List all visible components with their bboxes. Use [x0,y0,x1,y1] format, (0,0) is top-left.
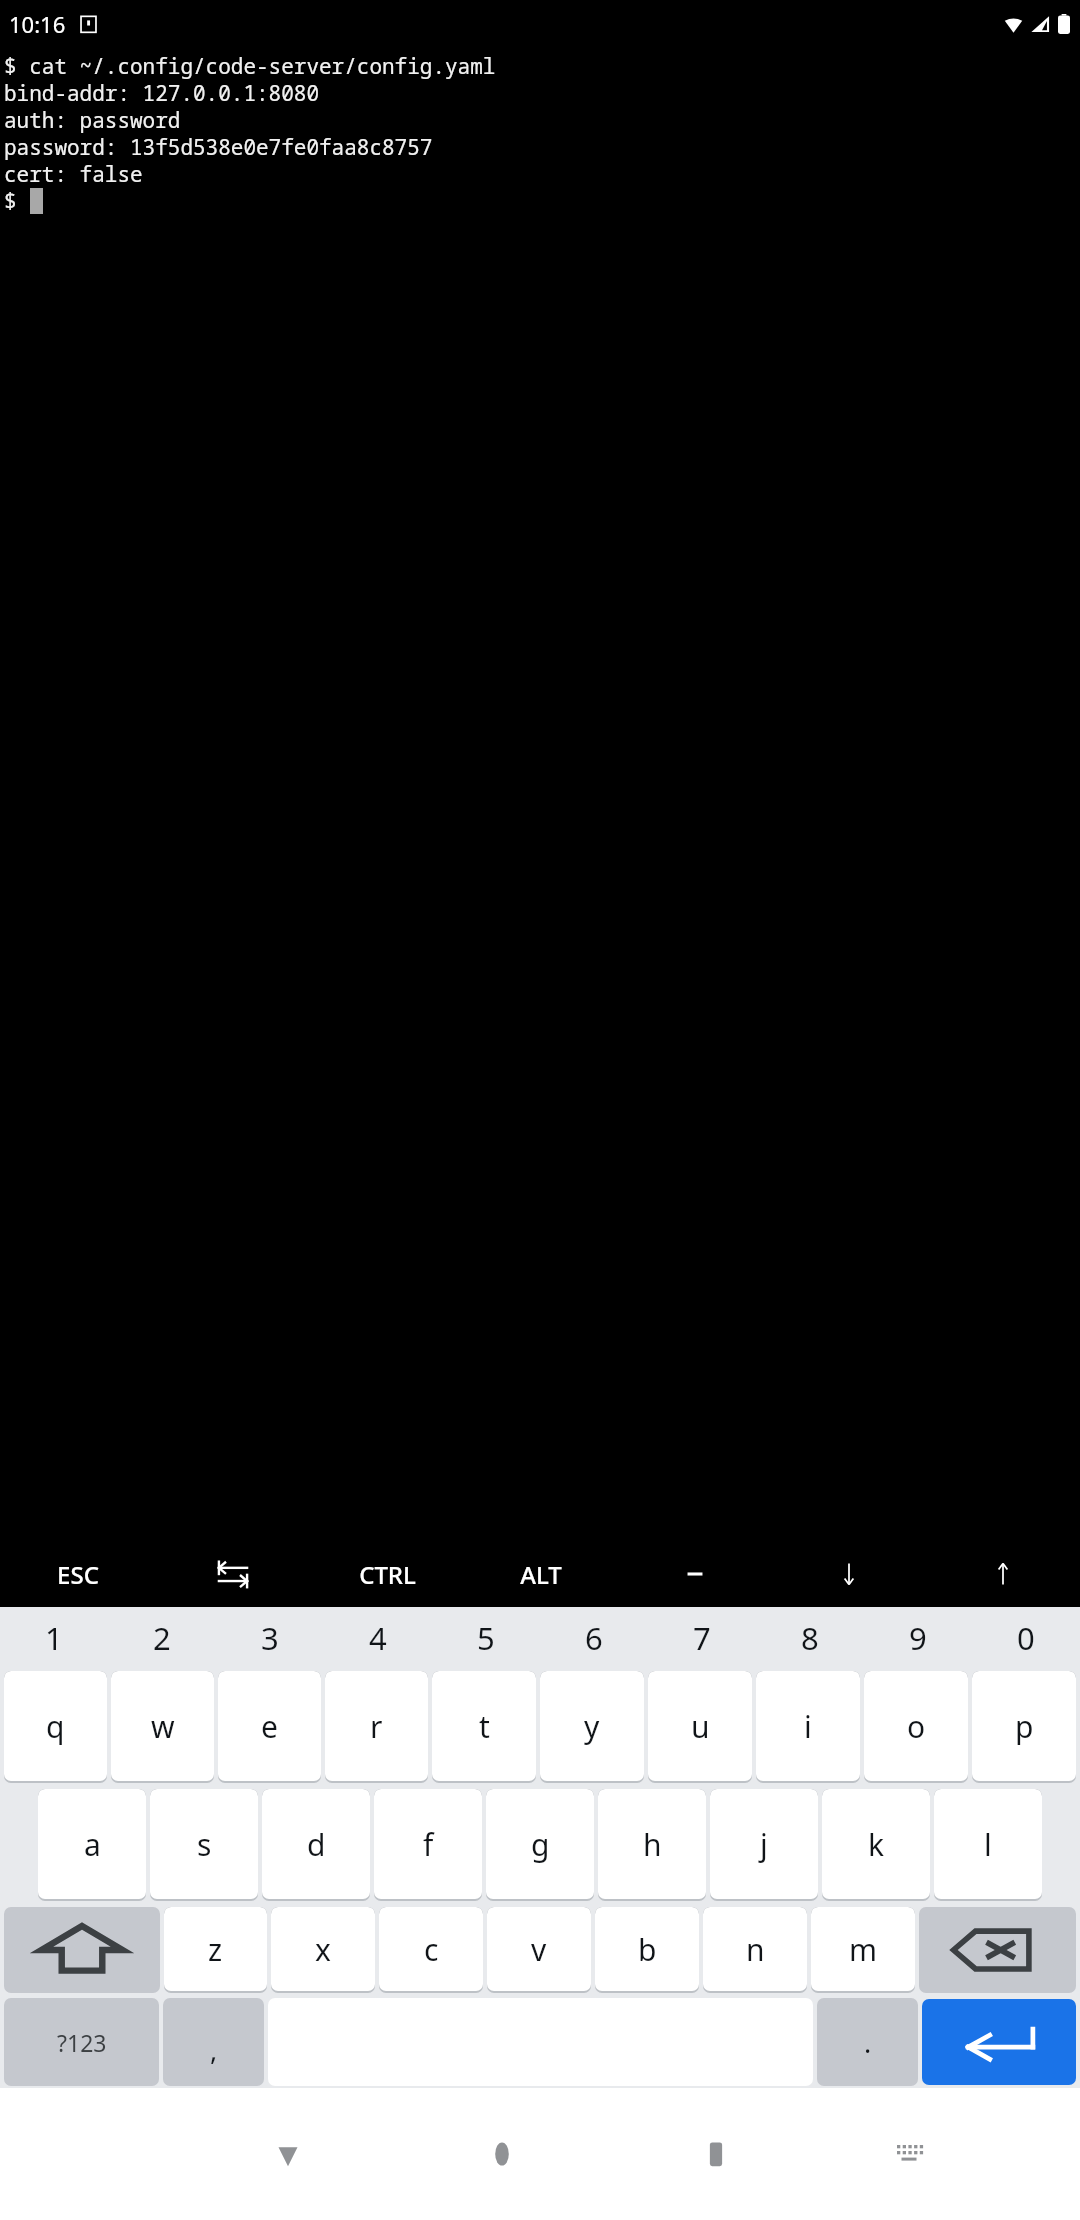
staticText: 8 [801,1617,819,1659]
button[interactable]: 8 [756,1607,864,1668]
staticText: auth: password [4,106,181,133]
button[interactable]: t [432,1671,536,1781]
staticText: cert: false [4,160,143,187]
button[interactable]: CTRL [310,1541,464,1607]
staticText: s [197,1824,212,1865]
button[interactable]: Backspace [919,1907,1076,1993]
button[interactable]: 5 [432,1607,540,1668]
staticText: v [531,1929,547,1970]
staticText: a [84,1824,101,1865]
button[interactable]: 7 [648,1607,756,1668]
button[interactable]: b [595,1907,699,1991]
staticText: r [370,1706,383,1747]
staticText: 10:16 [9,9,66,39]
staticText: $ [4,187,30,214]
button[interactable]: k [822,1789,930,1899]
staticText: 5 [477,1617,495,1659]
button[interactable]: ALT [464,1541,618,1607]
staticText: bind-addr: 127.0.0.1:8080 [4,79,319,106]
button[interactable]: Recents [609,2088,823,2220]
button[interactable]: c [379,1907,483,1991]
button[interactable]: m [811,1907,915,1991]
staticText: d [307,1824,326,1865]
staticText: 9 [909,1617,927,1659]
button[interactable]: p [972,1671,1076,1781]
button[interactable]: 1 [0,1607,108,1668]
button[interactable]: h [598,1789,706,1899]
staticText: CTRL [359,1558,416,1591]
button[interactable]: q [4,1671,107,1781]
button[interactable]: 0 [972,1607,1080,1668]
staticText: l [984,1824,992,1865]
staticText: ?123 [57,2027,107,2058]
button[interactable]: Back [181,2088,395,2220]
button[interactable]: Home [395,2088,609,2220]
button[interactable]: . [817,1998,918,2086]
button[interactable]: Switch keyboard [823,2088,994,2220]
staticText: $ cat ~/.config/code-server/config.yaml [4,52,496,79]
button[interactable]: Minus [618,1541,772,1607]
button[interactable]: , [163,1998,264,2086]
button[interactable]: o [864,1671,968,1781]
button[interactable]: Tab [155,1541,310,1607]
button[interactable]: e [218,1671,321,1781]
button[interactable]: 2 [108,1607,216,1668]
staticText: ESC [57,1558,99,1591]
staticText: p [1015,1706,1034,1747]
staticText: m [849,1929,878,1970]
button[interactable]: 4 [324,1607,432,1668]
button[interactable]: x [271,1907,375,1991]
button[interactable]: 6 [540,1607,648,1668]
button[interactable]: v [487,1907,591,1991]
staticText: password: 13f5d538e0e7fe0faa8c8757 [4,133,433,160]
staticText: q [46,1706,65,1747]
staticText: t [479,1706,490,1747]
staticText: ALT [520,1558,562,1591]
button[interactable]: s [150,1789,258,1899]
button[interactable]: Shift [4,1907,160,1993]
staticText: j [760,1824,768,1865]
button[interactable]: z [164,1907,267,1991]
button[interactable]: f [374,1789,482,1899]
button[interactable]: u [648,1671,752,1781]
button[interactable]: i [756,1671,860,1781]
staticText: z [208,1929,223,1970]
staticText: u [691,1706,710,1747]
staticText: 6 [585,1617,603,1659]
button[interactable]: Enter [922,1999,1076,2085]
staticText: e [261,1706,278,1747]
staticText: n [746,1929,765,1970]
button[interactable]: j [710,1789,818,1899]
button[interactable]: l [934,1789,1042,1899]
button[interactable]: y [540,1671,644,1781]
staticText: w [151,1706,175,1747]
staticText: 0 [1017,1617,1035,1659]
staticText: 3 [261,1617,279,1659]
button[interactable]: g [486,1789,594,1899]
button[interactable]: ESC [0,1541,155,1607]
staticText: i [804,1706,812,1747]
staticText: 2 [153,1617,171,1659]
button[interactable]: 9 [864,1607,972,1668]
button[interactable]: n [703,1907,807,1991]
button[interactable]: ?123 [4,1998,159,2086]
button[interactable]: a [38,1789,146,1899]
button[interactable]: d [262,1789,370,1899]
button[interactable]: r [325,1671,428,1781]
staticText: o [907,1706,926,1747]
staticText: 4 [369,1617,387,1659]
staticText: c [424,1929,439,1970]
button[interactable]: Up [926,1541,1080,1607]
button[interactable]: Down [772,1541,926,1607]
staticText: , [210,2031,218,2068]
staticText: g [531,1824,550,1865]
button[interactable]: 3 [216,1607,324,1668]
staticText: . [864,2024,872,2061]
staticText: y [584,1706,600,1747]
staticText: f [423,1824,434,1865]
staticText: b [638,1929,657,1970]
staticText: h [643,1824,662,1865]
staticText: 7 [693,1617,711,1659]
button[interactable]: w [111,1671,214,1781]
